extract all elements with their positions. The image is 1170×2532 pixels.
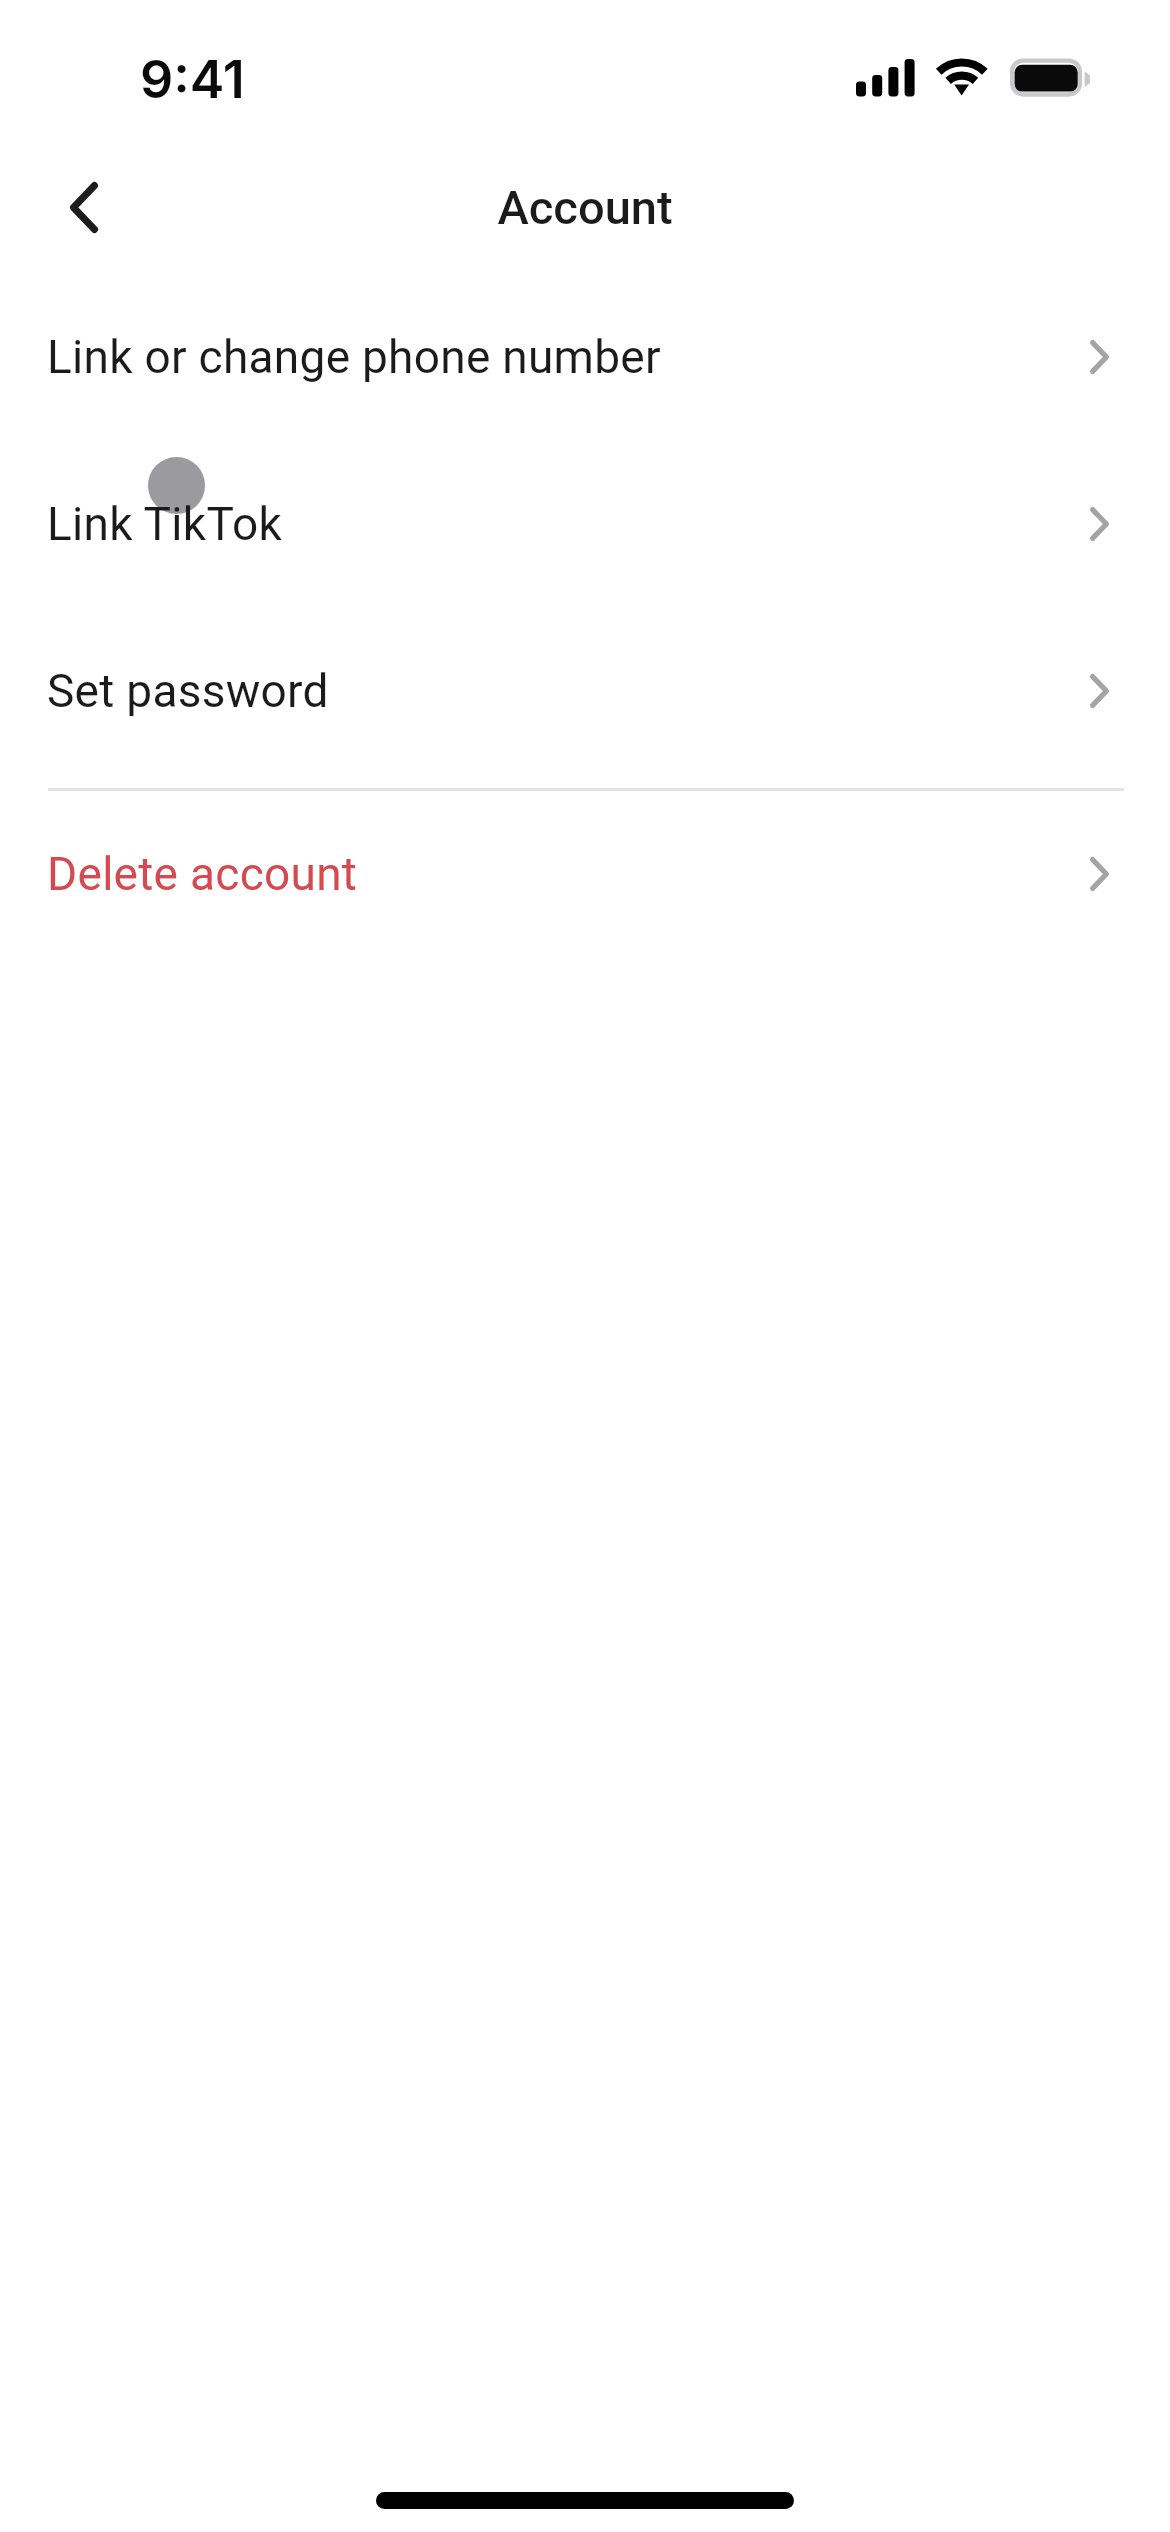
button[interactable]: Back — [28, 160, 140, 254]
staticText: Delete account — [47, 847, 358, 901]
staticText: 9:41 — [140, 48, 245, 111]
button[interactable]: Link or change phone number — [0, 288, 1170, 455]
staticText: Account — [497, 180, 673, 235]
staticText: Set password — [47, 664, 329, 718]
button[interactable]: Delete account — [0, 805, 1170, 972]
staticText: Link TikTok — [47, 497, 282, 551]
button[interactable]: Link TikTok — [0, 455, 1170, 622]
button[interactable]: Set password — [0, 622, 1170, 789]
staticText: Link or change phone number — [47, 330, 661, 384]
